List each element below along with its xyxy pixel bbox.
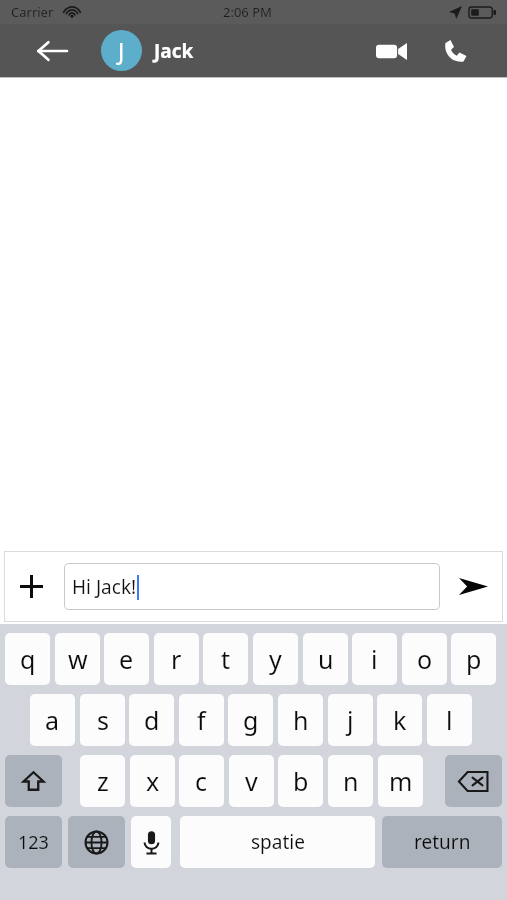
staticText: Carrier bbox=[11, 3, 54, 21]
staticText: x bbox=[146, 764, 160, 798]
button[interactable]: Add attachment bbox=[9, 568, 53, 605]
button[interactable]: Dictate bbox=[131, 816, 171, 868]
staticText: m bbox=[389, 764, 413, 798]
button[interactable]: f bbox=[179, 694, 224, 746]
staticText: g bbox=[243, 703, 259, 737]
button[interactable]: 123 bbox=[5, 816, 62, 868]
button[interactable]: Hi Jack! bbox=[64, 563, 440, 610]
button[interactable]: p bbox=[451, 633, 496, 685]
staticText: e bbox=[119, 642, 134, 676]
button[interactable]: n bbox=[328, 755, 373, 807]
button[interactable]: t bbox=[203, 633, 248, 685]
staticText: J bbox=[118, 35, 125, 66]
button[interactable]: return bbox=[382, 816, 502, 868]
staticText: u bbox=[318, 642, 334, 676]
staticText: o bbox=[417, 642, 433, 676]
button[interactable]: o bbox=[402, 633, 447, 685]
button[interactable]: l bbox=[427, 694, 472, 746]
button[interactable]: u bbox=[303, 633, 348, 685]
button[interactable]: s bbox=[80, 694, 125, 746]
button[interactable]: Send bbox=[447, 568, 499, 605]
button[interactable]: Shift bbox=[5, 755, 62, 807]
button[interactable]: Backspace bbox=[445, 755, 502, 807]
button[interactable]: spatie bbox=[180, 816, 375, 868]
staticText: 2:06 PM bbox=[223, 3, 272, 21]
staticText: Jack bbox=[154, 38, 194, 64]
staticText: z bbox=[97, 764, 109, 798]
button[interactable]: j bbox=[328, 694, 373, 746]
button[interactable]: i bbox=[352, 633, 397, 685]
staticText: s bbox=[97, 703, 109, 737]
button[interactable]: d bbox=[129, 694, 174, 746]
button[interactable]: b bbox=[278, 755, 323, 807]
staticText: d bbox=[144, 703, 160, 737]
staticText: w bbox=[68, 642, 88, 676]
staticText: k bbox=[393, 703, 407, 737]
staticText: spatie bbox=[251, 829, 305, 855]
button[interactable]: J bbox=[101, 30, 194, 71]
button[interactable]: h bbox=[278, 694, 323, 746]
button[interactable]: c bbox=[179, 755, 224, 807]
staticText: v bbox=[245, 764, 258, 798]
button[interactable]: a bbox=[30, 694, 75, 746]
staticText: 123 bbox=[18, 830, 49, 855]
staticText: f bbox=[197, 703, 206, 737]
staticText: Hi Jack! bbox=[72, 574, 137, 600]
button[interactable]: r bbox=[154, 633, 199, 685]
staticText: l bbox=[446, 703, 453, 737]
button[interactable]: z bbox=[80, 755, 125, 807]
staticText: t bbox=[221, 642, 231, 676]
button[interactable]: y bbox=[253, 633, 298, 685]
staticText: j bbox=[347, 703, 354, 737]
button[interactable]: m bbox=[378, 755, 423, 807]
staticText: a bbox=[45, 703, 60, 737]
button[interactable]: w bbox=[55, 633, 100, 685]
button[interactable]: Video call bbox=[366, 34, 416, 68]
staticText: y bbox=[269, 642, 282, 676]
staticText: r bbox=[171, 642, 182, 676]
button[interactable]: g bbox=[228, 694, 273, 746]
button[interactable]: Back bbox=[26, 34, 78, 68]
staticText: c bbox=[195, 764, 208, 798]
button[interactable]: Call bbox=[430, 34, 480, 68]
staticText: p bbox=[466, 642, 482, 676]
button[interactable]: x bbox=[130, 755, 175, 807]
staticText: h bbox=[293, 703, 309, 737]
button[interactable]: Next keyboard bbox=[68, 816, 125, 868]
staticText: b bbox=[293, 764, 309, 798]
button[interactable]: e bbox=[104, 633, 149, 685]
button[interactable]: v bbox=[229, 755, 274, 807]
staticText: n bbox=[343, 764, 359, 798]
button[interactable]: k bbox=[377, 694, 422, 746]
staticText: return bbox=[414, 829, 471, 855]
staticText: q bbox=[20, 642, 36, 676]
staticText: i bbox=[371, 642, 378, 676]
button[interactable]: q bbox=[5, 633, 50, 685]
